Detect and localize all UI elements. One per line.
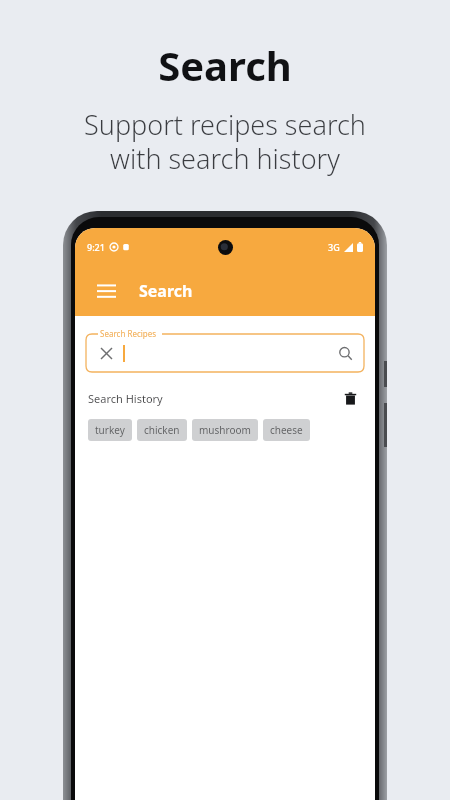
button[interactable]: Open navigation menu <box>89 274 123 308</box>
button[interactable]: turkey <box>88 419 132 441</box>
staticText: Search <box>139 280 193 302</box>
staticText: 3G <box>328 241 340 253</box>
staticText: Support recipes search with search histo… <box>0 106 450 177</box>
button[interactable]: Clear search text <box>86 334 364 372</box>
staticText: turkey <box>95 423 125 437</box>
staticText: chicken <box>144 423 180 437</box>
staticText: cheese <box>270 423 303 437</box>
button[interactable]: mushroom <box>192 419 258 441</box>
staticText: Search <box>0 38 450 92</box>
button[interactable]: Clear search text <box>95 342 117 364</box>
staticText: 9:21 <box>87 241 105 253</box>
staticText: Search History <box>88 391 163 406</box>
button[interactable]: Clear search history <box>338 386 362 410</box>
button[interactable]: chicken <box>137 419 187 441</box>
button[interactable]: cheese <box>263 419 310 441</box>
staticText: Search Recipes <box>100 328 157 339</box>
button[interactable]: Search <box>332 340 358 366</box>
staticText: mushroom <box>199 423 251 437</box>
